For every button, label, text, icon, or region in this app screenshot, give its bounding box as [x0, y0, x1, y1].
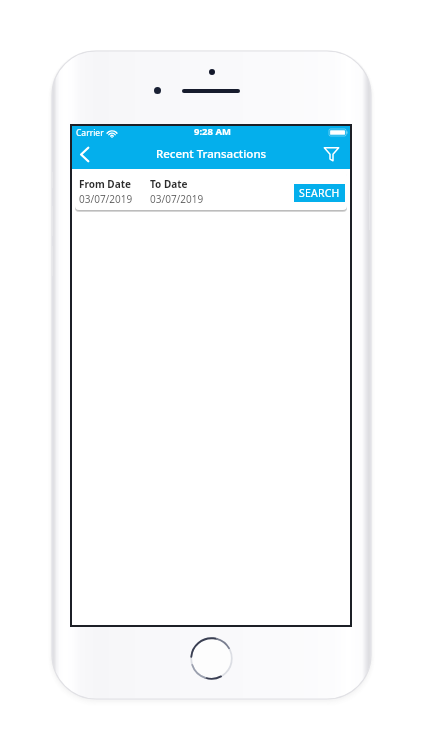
button[interactable]: To Date [150, 177, 204, 206]
staticText: To Date [150, 177, 188, 191]
staticText: 03/07/2019 [79, 192, 133, 206]
staticText: Recent Transactions [156, 146, 267, 162]
button[interactable]: Home [190, 637, 233, 680]
button[interactable]: Filter [318, 143, 344, 165]
staticText: 03/07/2019 [150, 192, 204, 206]
staticText: From Date [79, 177, 131, 191]
button[interactable]: From Date [79, 177, 133, 206]
button[interactable]: Back [71, 143, 97, 165]
staticText: SEARCH [299, 186, 340, 200]
staticText: Carrier [76, 127, 104, 139]
staticText: 9:28 AM [194, 125, 231, 138]
button[interactable]: SEARCH [294, 184, 345, 202]
